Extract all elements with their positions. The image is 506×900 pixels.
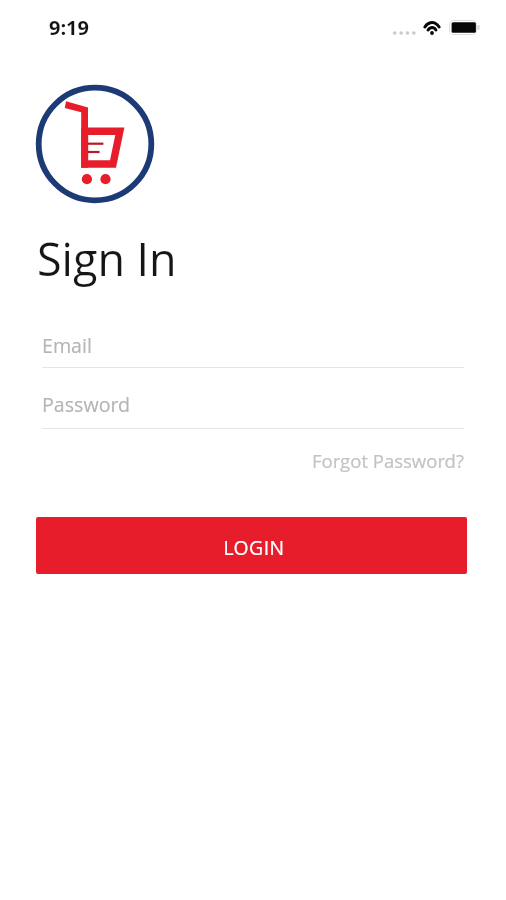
staticText: LOGIN [223, 534, 285, 560]
staticText: Sign In [37, 228, 177, 289]
button[interactable]: Email [42, 324, 464, 368]
staticText: 9:19 [49, 14, 89, 41]
staticText: Email [42, 332, 92, 359]
staticText: Password [42, 391, 131, 418]
button[interactable]: LOGIN [36, 517, 467, 574]
button[interactable]: Forgot Password? [312, 446, 464, 475]
button[interactable]: Password [42, 383, 464, 429]
